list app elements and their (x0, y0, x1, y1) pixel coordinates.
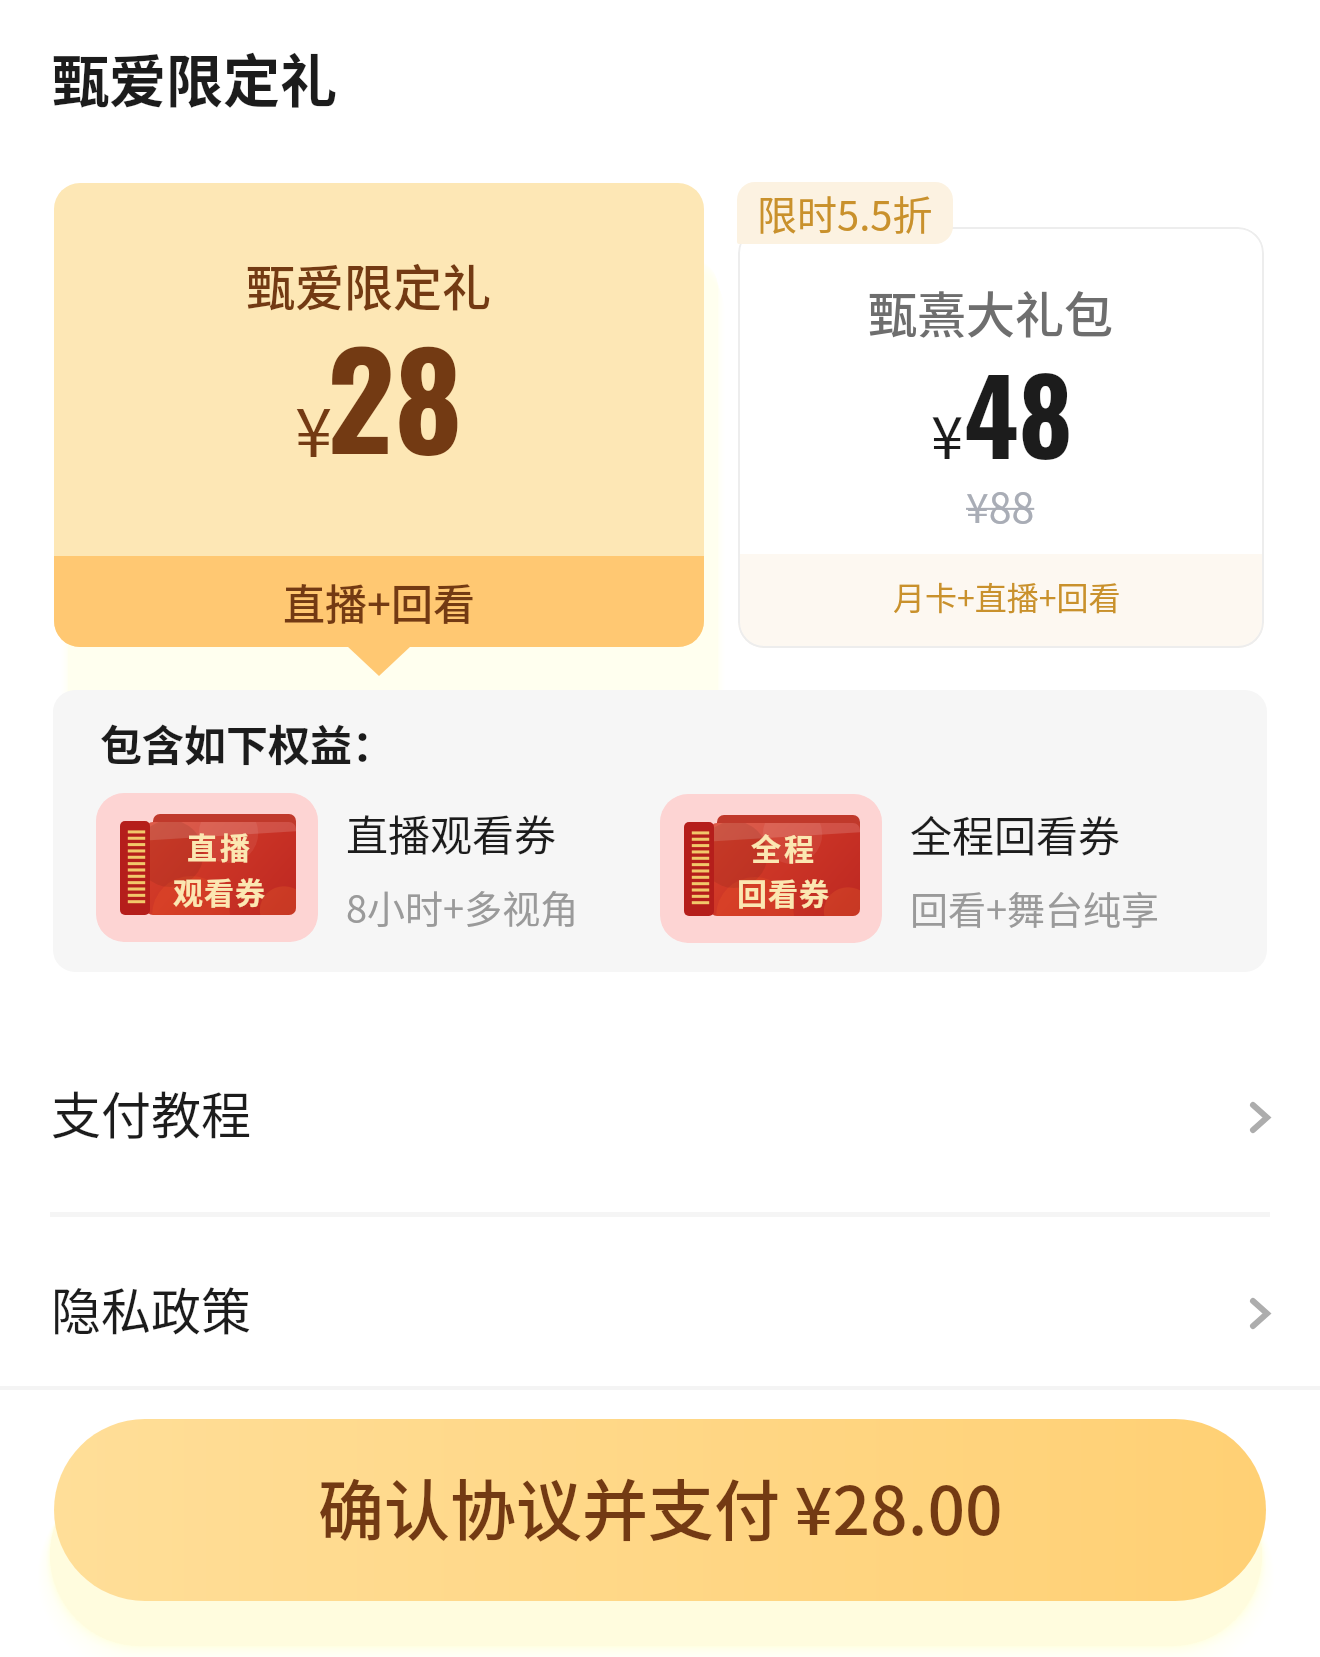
staticText: 8小时+多视角 (346, 879, 579, 934)
other: 隐私政策 (1250, 1298, 1270, 1329)
button[interactable]: 甄熹大礼包 (738, 227, 1264, 648)
staticText: 全程 (751, 825, 817, 868)
staticText: 全程回看券 (910, 803, 1121, 864)
staticText: ¥ (931, 392, 964, 476)
staticText: 限时5.5折 (757, 184, 933, 242)
staticText: 确认协议并支付 ¥28.00 (318, 1458, 1003, 1554)
staticText: 包含如下权益： (100, 712, 395, 773)
staticText: ¥88 (966, 475, 1035, 534)
staticText: 回看券 (737, 870, 830, 913)
staticText: 48 (964, 335, 1073, 489)
button[interactable]: 甄爱限定礼 (54, 183, 704, 647)
staticText: 甄爱限定礼 (246, 249, 492, 320)
staticText: 甄爱限定礼 (52, 36, 337, 119)
staticText: 支付教程 (51, 1076, 251, 1148)
staticText: 直播 (187, 824, 253, 867)
button[interactable]: 支付教程 (0, 1044, 1320, 1180)
staticText: 28 (327, 298, 463, 492)
button[interactable]: 确认协议并支付 ¥28.00 (54, 1419, 1266, 1601)
staticText: 月卡+直播+回看 (893, 573, 1121, 619)
staticText: 回看+舞台纯享 (910, 880, 1160, 935)
button[interactable]: 隐私政策 (0, 1240, 1320, 1376)
button[interactable]: 限时5.5折 (737, 182, 953, 244)
other: 支付教程 (1250, 1102, 1270, 1133)
staticText: 隐私政策 (51, 1272, 251, 1344)
staticText: 甄熹大礼包 (868, 276, 1114, 347)
staticText: 直播+回看 (283, 571, 475, 632)
staticText: 直播观看券 (346, 802, 557, 863)
staticText: ¥ (295, 379, 333, 476)
staticText: 观看券 (173, 869, 266, 912)
